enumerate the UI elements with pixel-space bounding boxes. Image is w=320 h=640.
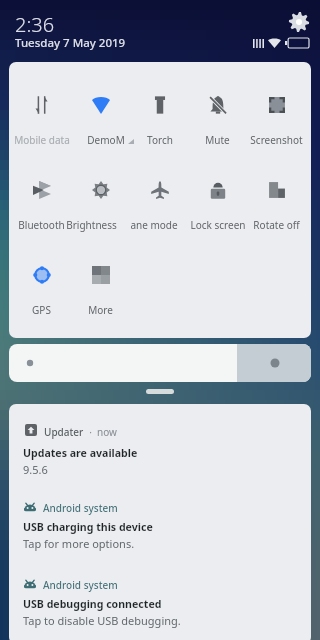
staticText: DemoM: [87, 133, 125, 147]
staticText: Android system: [43, 501, 118, 515]
staticText: Mobile data: [14, 133, 70, 147]
staticText: 9.5.6: [23, 462, 48, 477]
staticText: More: [88, 303, 113, 317]
button[interactable]: Lock screen: [188, 168, 247, 232]
button[interactable]: Brightness: [71, 168, 130, 232]
staticText: USB charging this device: [23, 520, 153, 534]
staticText: Tap to disable USB debugging.: [23, 613, 181, 628]
staticText: Lock screen: [190, 218, 246, 232]
button[interactable]: Mobile data: [12, 83, 71, 147]
staticText: Tap for more options.: [23, 536, 135, 551]
staticText: Rotate off: [253, 218, 300, 232]
button[interactable]: Airplane mode: [130, 168, 189, 232]
staticText: ane mode: [130, 218, 178, 232]
staticText: Mute: [205, 133, 230, 147]
staticText: · now: [84, 425, 117, 439]
button[interactable]: Mute: [188, 83, 247, 147]
staticText: Brightness: [66, 218, 117, 232]
staticText: Updates are available: [23, 446, 138, 460]
staticText: Updater: [44, 425, 84, 439]
button[interactable]: Android system: [9, 558, 311, 635]
button[interactable]: Android system: [9, 481, 311, 558]
staticText: Android system: [43, 578, 118, 592]
button[interactable]: More: [71, 253, 130, 317]
button[interactable]: DemoMobile: [71, 83, 130, 147]
button[interactable]: Brightness: [9, 344, 311, 382]
button[interactable]: Settings: [288, 11, 310, 33]
button[interactable]: GPS: [12, 253, 71, 317]
staticText: Tuesday 7 May 2019: [15, 35, 126, 51]
button[interactable]: Rotate off: [247, 168, 306, 232]
button[interactable]: Torch: [130, 83, 189, 147]
staticText: Screenshot: [250, 133, 303, 147]
staticText: GPS: [32, 303, 51, 317]
staticText: Bluetooth: [18, 218, 65, 232]
staticText: Torch: [147, 133, 173, 147]
button[interactable]: Updater: [9, 404, 311, 480]
staticText: 2:36: [15, 11, 55, 38]
button[interactable]: Screenshot: [247, 83, 306, 147]
button[interactable]: Bluetooth: [12, 168, 71, 232]
staticText: USB debugging connected: [23, 597, 162, 611]
